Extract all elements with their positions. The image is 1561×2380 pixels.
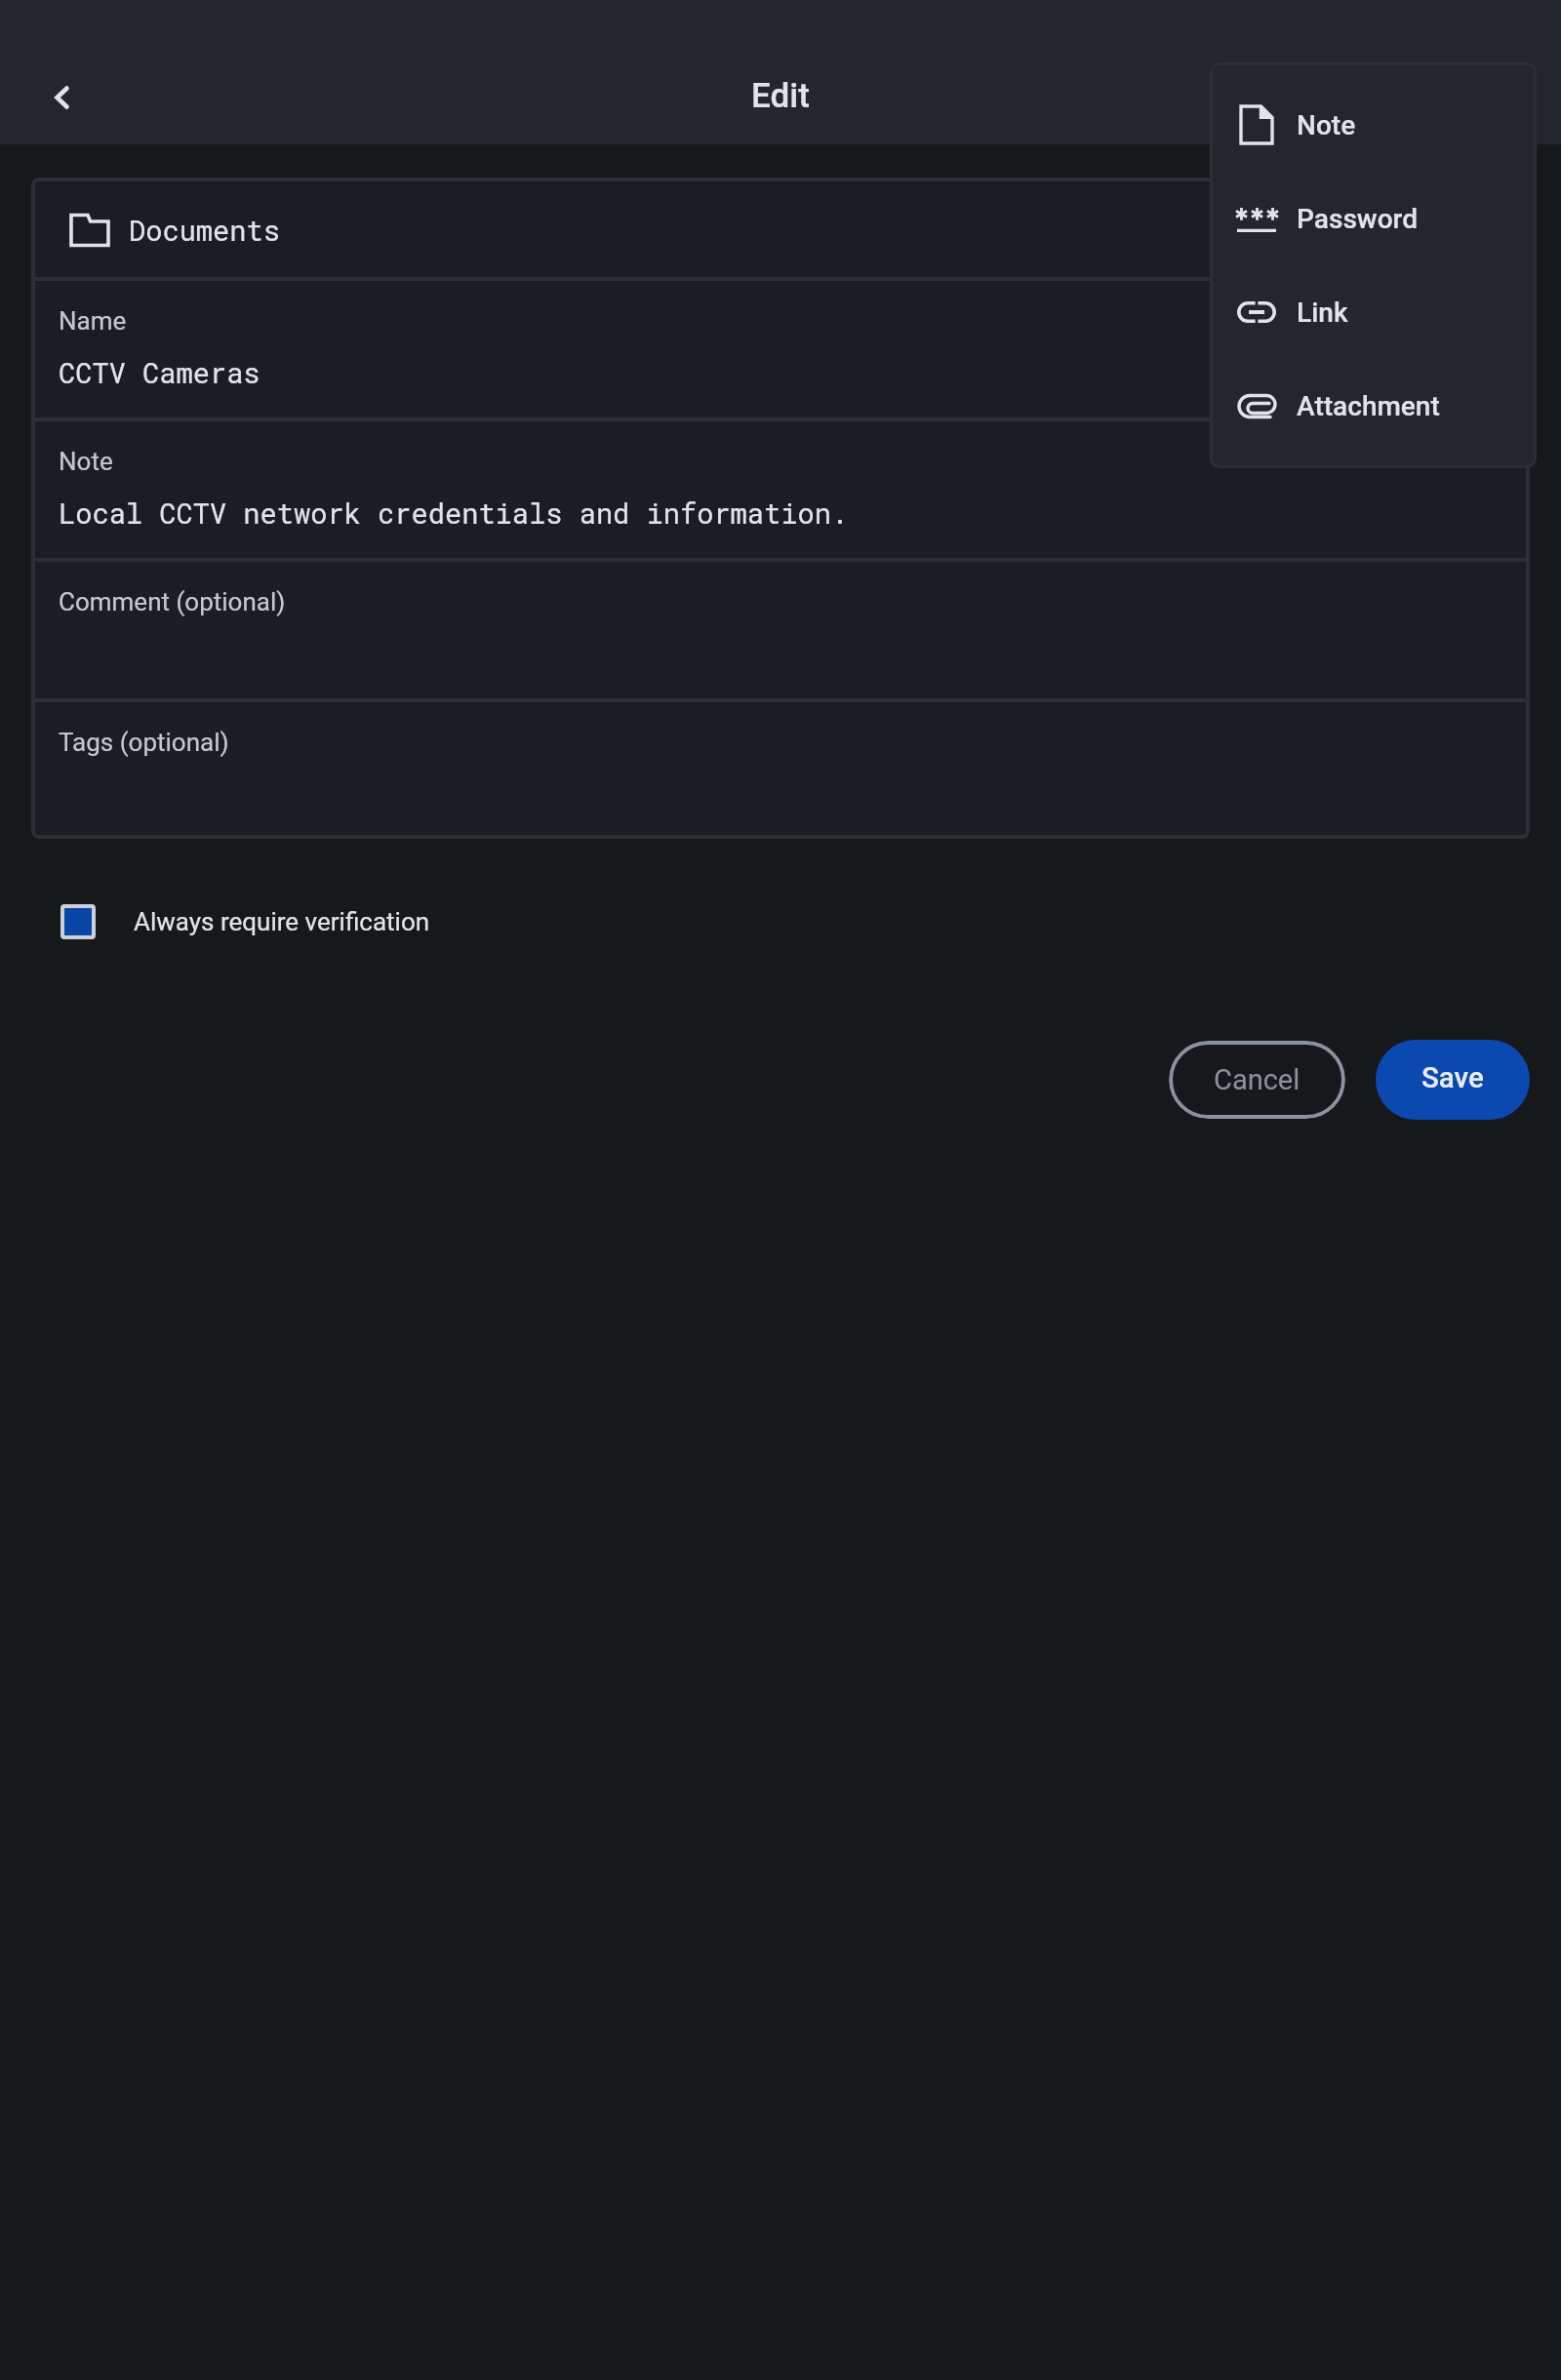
button[interactable]: Back: [15, 49, 108, 142]
button[interactable]: Note: [1210, 78, 1537, 172]
staticText: Attachment: [1297, 390, 1440, 422]
staticText: Tags (optional): [59, 728, 229, 757]
button[interactable]: Name: [31, 281, 1530, 417]
staticText: Name: [59, 306, 127, 336]
button[interactable]: Attachment: [1210, 359, 1537, 453]
button[interactable]: Cancel: [1169, 1041, 1345, 1119]
staticText: Comment (optional): [59, 587, 286, 616]
staticText: CCTV Cameras: [59, 354, 260, 391]
staticText: Edit: [751, 76, 810, 116]
button[interactable]: Tags (optional): [31, 702, 1530, 839]
button[interactable]: Password: [1210, 172, 1537, 265]
staticText: Password: [1297, 203, 1419, 235]
staticText: Link: [1297, 297, 1348, 329]
staticText: Note: [1297, 109, 1356, 141]
staticText: Documents: [129, 212, 280, 249]
staticText: Always require verification: [134, 907, 430, 936]
button[interactable]: Link: [1210, 265, 1537, 359]
button[interactable]: Documents: [31, 178, 1530, 277]
button[interactable]: Comment (optional): [31, 562, 1530, 698]
staticText: Cancel: [1214, 1063, 1301, 1096]
button[interactable]: Save: [1376, 1040, 1530, 1120]
button[interactable]: Note: [31, 421, 1530, 558]
staticText: Local CCTV network credentials and infor…: [59, 495, 849, 532]
staticText: Save: [1421, 1061, 1484, 1095]
button[interactable]: Always require verification: [60, 904, 430, 939]
staticText: Note: [59, 447, 113, 476]
